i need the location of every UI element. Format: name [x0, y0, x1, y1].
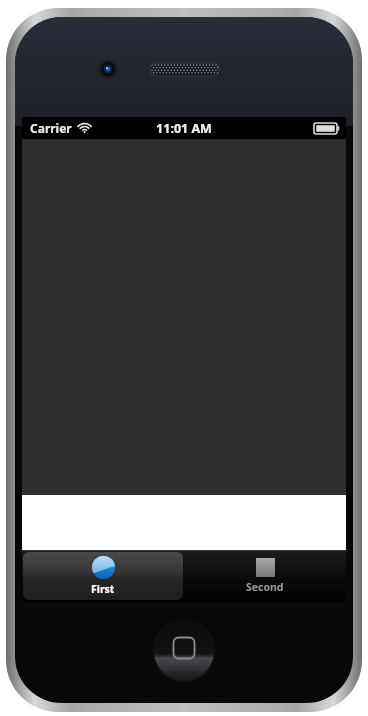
staticText: 11:01 AM: [156, 120, 212, 137]
button[interactable]: First: [23, 552, 183, 600]
other: Second: [256, 558, 275, 577]
staticText: Carrier: [30, 120, 72, 136]
other: First: [92, 556, 115, 579]
staticText: Second: [246, 580, 284, 594]
staticText: First: [91, 582, 115, 596]
other: Home: [0, 0, 368, 716]
button[interactable]: Second: [185, 552, 345, 600]
